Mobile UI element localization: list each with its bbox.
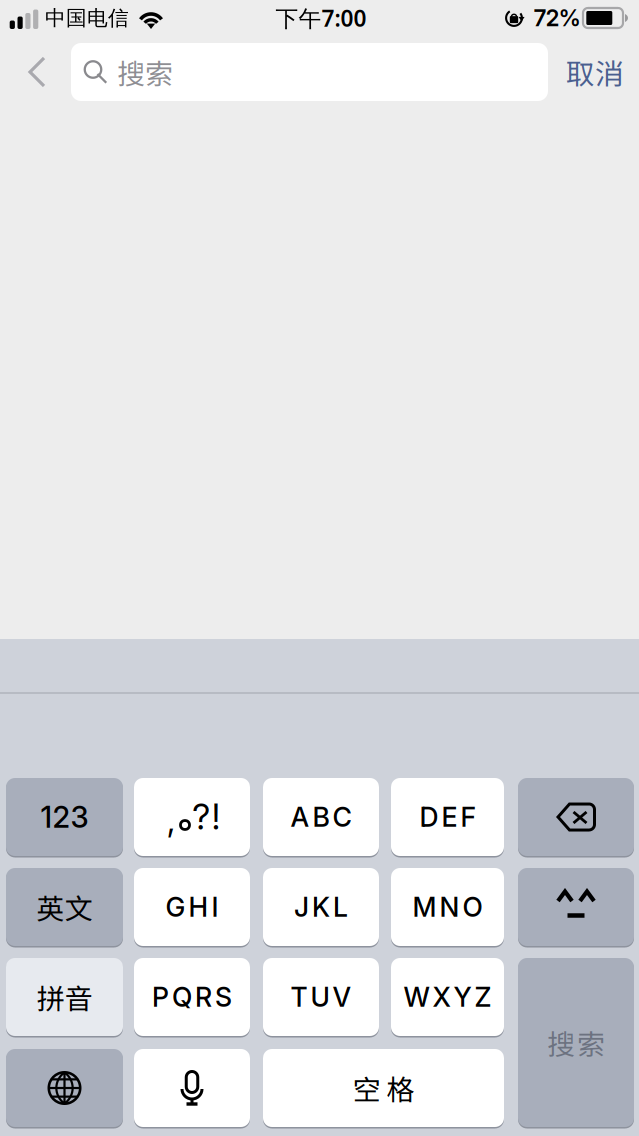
staticText: 拼音 [36, 977, 92, 1017]
staticText: 搜索 [117, 52, 173, 92]
button[interactable]: GHI [134, 868, 250, 946]
button[interactable]: DEF [391, 778, 504, 856]
button[interactable]: ABC [263, 778, 379, 856]
staticText: MNO [412, 891, 482, 923]
staticText: TUV [290, 981, 351, 1013]
staticText: 英文 [36, 887, 92, 927]
button[interactable]: 拼音 [6, 958, 123, 1036]
button[interactable]: Next keyboard [6, 1049, 123, 1127]
button[interactable]: Back [9, 40, 65, 104]
staticText: JKL [294, 891, 348, 923]
button[interactable]: 英文 [6, 868, 123, 946]
staticText: 72% [533, 4, 580, 32]
button[interactable]: Delete [518, 778, 634, 856]
button[interactable]: 取消 [552, 40, 638, 104]
staticText: 下午7:00 [275, 3, 366, 33]
staticText: GHI [165, 891, 218, 923]
button[interactable]: Dictation [134, 1049, 250, 1127]
button[interactable]: 搜索 [518, 958, 634, 1127]
button[interactable]: MNO [391, 868, 504, 946]
button[interactable]: 123 [6, 778, 123, 856]
button[interactable]: 空格 [263, 1049, 504, 1127]
button[interactable]: PQRS [134, 958, 250, 1036]
button[interactable]: JKL [263, 868, 379, 946]
staticText: ?! [192, 796, 220, 838]
staticText: PQRS [152, 981, 232, 1013]
staticText: WXYZ [403, 981, 491, 1013]
button[interactable]: Punctuation [134, 778, 250, 856]
staticText: 取消 [566, 51, 624, 93]
staticText: 123 [40, 799, 88, 835]
button[interactable]: WXYZ [391, 958, 504, 1036]
staticText: DEF [419, 801, 475, 833]
button[interactable]: Emoticon [518, 868, 634, 946]
staticText: 空格 [353, 1068, 414, 1108]
staticText: ABC [290, 801, 351, 833]
staticText: 中国电信 [45, 5, 129, 31]
staticText: 搜索 [547, 1022, 605, 1063]
staticText: , [167, 799, 175, 841]
button[interactable]: TUV [263, 958, 379, 1036]
